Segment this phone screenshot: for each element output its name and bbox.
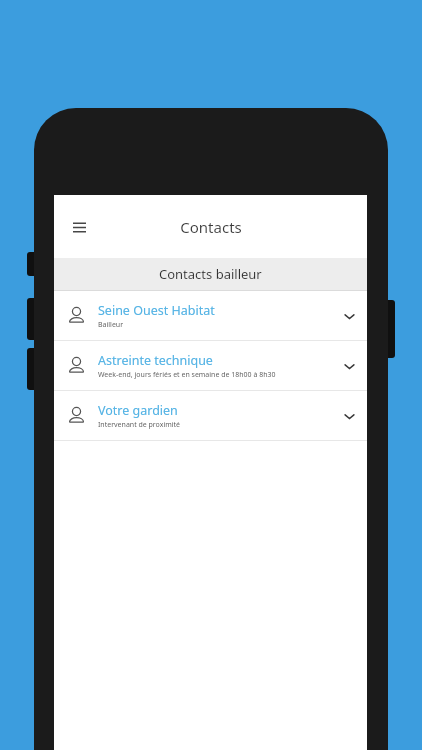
staticText: Contacts — [180, 217, 242, 237]
staticText: Astreinte technique — [98, 352, 213, 369]
staticText: Intervenant de proximité — [98, 420, 181, 430]
button[interactable]: Astreinte technique — [54, 341, 367, 390]
staticText: Bailleur — [98, 320, 124, 330]
staticText: Votre gardien — [98, 402, 178, 419]
button[interactable]: Menu — [58, 206, 100, 248]
staticText: Contacts bailleur — [159, 265, 262, 283]
staticText: Week-end, jours fériés et en semaine de … — [98, 370, 276, 380]
button[interactable]: Seine Ouest Habitat — [54, 291, 367, 340]
button[interactable]: Votre gardien — [54, 391, 367, 440]
staticText: Seine Ouest Habitat — [98, 302, 215, 319]
